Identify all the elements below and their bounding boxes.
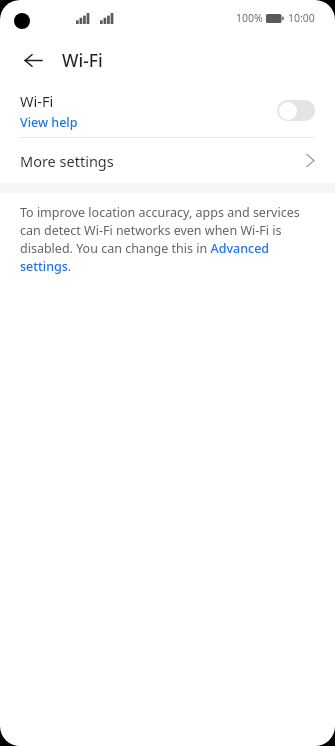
button[interactable]: Wi-Fi toggle [277, 100, 315, 121]
button[interactable]: Back [10, 37, 56, 83]
staticText: Wi-Fi [20, 91, 54, 111]
button[interactable]: More settings [0, 138, 335, 183]
staticText: 10:00 [288, 11, 315, 25]
staticText: Wi-Fi [62, 48, 103, 72]
button[interactable]: Wi-Fi [0, 84, 335, 137]
staticText: More settings [20, 151, 306, 171]
staticText: 100% [236, 11, 263, 25]
staticText: View help [20, 114, 78, 131]
staticText: To improve location accuracy, apps and s… [20, 204, 315, 274]
